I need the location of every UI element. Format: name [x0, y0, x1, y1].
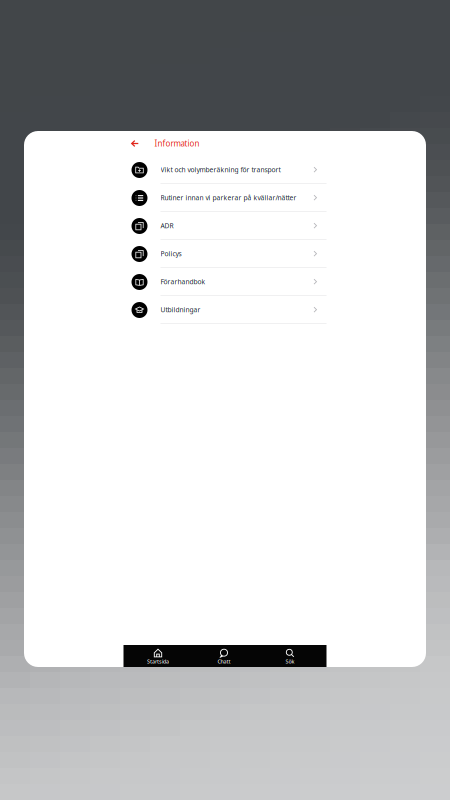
button[interactable]: Rutiner innan vi parkerar på kvällar/nät… — [131, 184, 326, 212]
staticText: Förarhandbok — [160, 277, 205, 286]
staticText: Policys — [160, 249, 181, 258]
button[interactable]: Sök — [257, 645, 323, 667]
staticText: ADR — [160, 221, 173, 230]
staticText: Sök — [285, 658, 294, 665]
staticText: Chatt — [217, 658, 230, 665]
button[interactable]: Utbildningar — [131, 296, 326, 324]
button[interactable]: Vikt och volymberäkning för transport — [131, 156, 326, 184]
staticText: Rutiner innan vi parkerar på kvällar/nät… — [160, 193, 296, 202]
button[interactable]: Policys — [131, 240, 326, 268]
button[interactable]: ADR — [131, 212, 326, 240]
staticText: Startsida — [147, 658, 169, 665]
staticText: Information — [155, 138, 200, 149]
button[interactable]: Back — [131, 139, 139, 148]
button[interactable]: Förarhandbok — [131, 268, 326, 296]
button[interactable]: Chatt — [191, 645, 257, 667]
staticText: Utbildningar — [160, 305, 200, 314]
staticText: Vikt och volymberäkning för transport — [160, 165, 280, 174]
button[interactable]: Startsida — [125, 645, 191, 667]
